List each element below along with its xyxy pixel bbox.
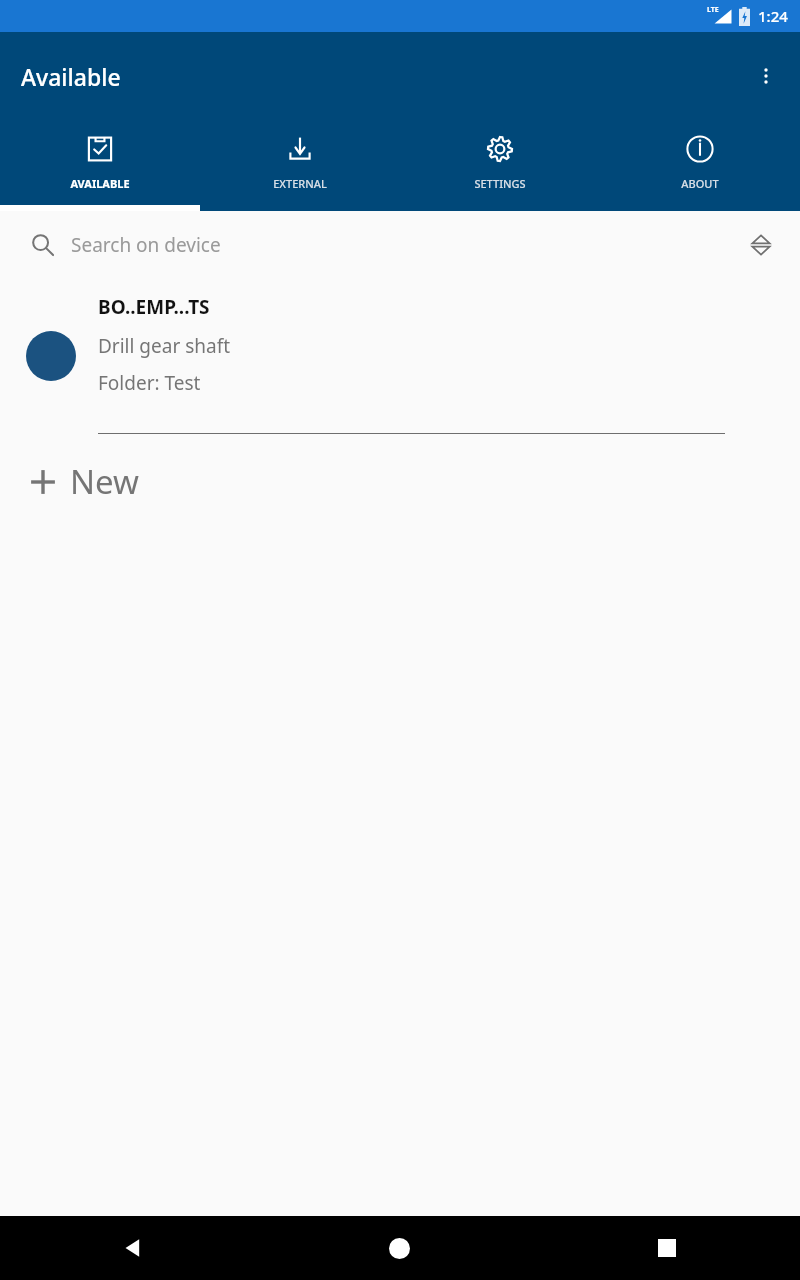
button[interactable]: Home — [266, 1216, 533, 1280]
staticText: Drill gear shaft — [98, 333, 231, 359]
staticText: BO..EMP...TS — [98, 294, 210, 320]
button[interactable]: EXTERNAL — [200, 120, 400, 205]
staticText: ABOUT — [681, 176, 719, 191]
staticText: LTE — [707, 5, 719, 15]
button[interactable]: Search on device — [71, 211, 737, 278]
button[interactable]: Search — [20, 222, 66, 268]
staticText: SETTINGS — [474, 176, 526, 191]
button[interactable]: Sort — [737, 221, 785, 269]
button[interactable]: New — [0, 434, 800, 529]
button[interactable]: Back — [0, 1216, 266, 1280]
staticText: Folder: Test — [98, 370, 201, 396]
staticText: 1:24 — [758, 6, 788, 26]
staticText: AVAILABLE — [70, 176, 130, 191]
button[interactable]: BO..EMP...TS — [0, 278, 800, 434]
button[interactable]: AVAILABLE — [0, 120, 200, 205]
button[interactable]: ABOUT — [600, 120, 800, 205]
staticText: EXTERNAL — [273, 176, 327, 191]
staticText: Search on device — [71, 232, 221, 258]
button[interactable]: Recent apps — [533, 1216, 800, 1280]
staticText: Available — [21, 61, 121, 92]
staticText: New — [70, 459, 139, 504]
button[interactable]: More options — [742, 52, 790, 100]
button[interactable]: SETTINGS — [400, 120, 600, 205]
